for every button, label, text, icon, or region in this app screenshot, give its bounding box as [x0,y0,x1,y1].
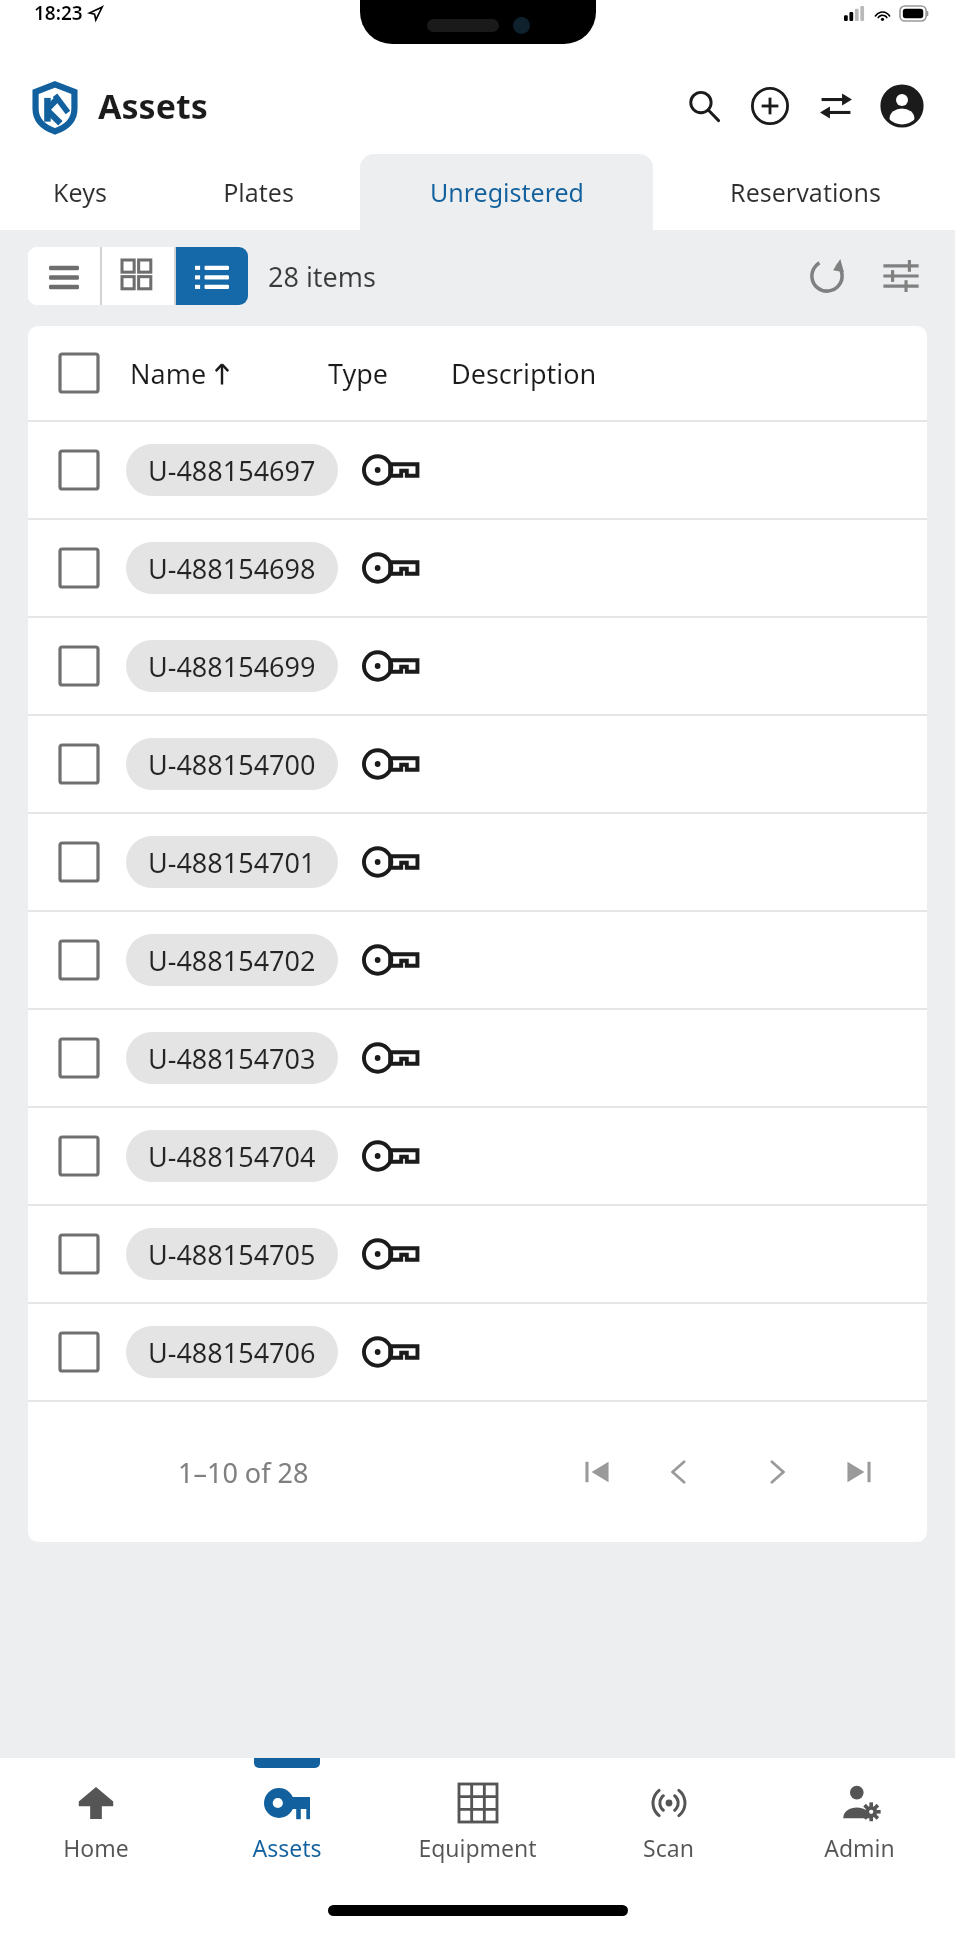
staticText: 1–10 of 28 [178,1454,309,1491]
button[interactable]: Grid view [102,247,174,305]
staticText: U-488154702 [148,942,316,979]
button[interactable]: Equipment [382,1758,573,1882]
staticText: U-488154698 [148,550,316,587]
staticText: U-488154699 [148,648,316,685]
button[interactable]: Select [28,1304,927,1400]
staticText: 28 items [268,258,377,295]
button[interactable]: Select [28,520,927,616]
button[interactable]: Rows view [28,247,100,305]
staticText: Assets [98,83,208,129]
button[interactable]: Assets [191,1758,382,1882]
button[interactable]: Scan [573,1758,764,1882]
staticText: U-488154704 [148,1138,316,1175]
button[interactable]: Keys [0,154,160,230]
button[interactable]: First page [569,1444,625,1500]
button[interactable]: Select [58,1135,100,1177]
button[interactable]: Admin [764,1758,955,1882]
button[interactable]: Select [28,814,927,910]
button[interactable]: Refresh [799,248,855,304]
staticText: Keys [53,175,107,209]
button[interactable]: Transfer [809,79,863,133]
staticText: U-488154705 [148,1236,316,1273]
staticText: Type [328,355,389,392]
staticText: Assets [252,1832,322,1863]
button[interactable]: Select [58,352,100,394]
button[interactable]: Select [58,743,100,785]
button[interactable]: Select [28,1108,927,1204]
staticText: Plates [223,175,294,209]
staticText: Unregistered [430,175,584,209]
staticText: U-488154697 [148,452,316,489]
staticText: U-488154706 [148,1334,316,1371]
button[interactable]: Select [28,716,927,812]
staticText: Description [451,355,597,392]
button[interactable]: Select [58,645,100,687]
button[interactable]: Filter [873,248,929,304]
button[interactable]: Select [58,1037,100,1079]
staticText: U-488154701 [148,844,316,881]
button[interactable]: Select [28,1010,927,1106]
button[interactable]: Select [28,422,927,518]
staticText: Reservations [730,175,881,209]
button[interactable]: Previous page [651,1444,707,1500]
button[interactable]: Select [28,912,927,1008]
staticText: U-488154700 [148,746,316,783]
staticText: Home [63,1832,129,1863]
staticText: U-488154703 [148,1040,316,1077]
button[interactable]: Select [58,1331,100,1373]
button[interactable]: Unregistered [360,154,653,230]
button[interactable]: Search [677,79,731,133]
button[interactable]: List view [176,247,248,305]
staticText: Scan [643,1832,694,1863]
button[interactable]: Select [58,939,100,981]
button[interactable]: Reservations [656,154,955,230]
button[interactable]: Select [58,547,100,589]
button[interactable]: Select [28,618,927,714]
button[interactable]: Plates [160,154,357,230]
button[interactable]: Select [58,841,100,883]
button[interactable]: Last page [831,1444,887,1500]
button[interactable]: Next page [749,1444,805,1500]
staticText: Admin [824,1832,895,1863]
staticText: 18:23 [34,0,83,26]
staticText: Equipment [418,1832,537,1863]
staticText: Name [130,355,207,392]
button[interactable]: Account [875,79,929,133]
button[interactable]: Select [58,449,100,491]
button[interactable]: Select [28,1206,927,1302]
button[interactable]: Home [0,1758,191,1882]
button[interactable]: Select [58,1233,100,1275]
button[interactable]: Add [743,79,797,133]
other: Logo [28,79,82,133]
